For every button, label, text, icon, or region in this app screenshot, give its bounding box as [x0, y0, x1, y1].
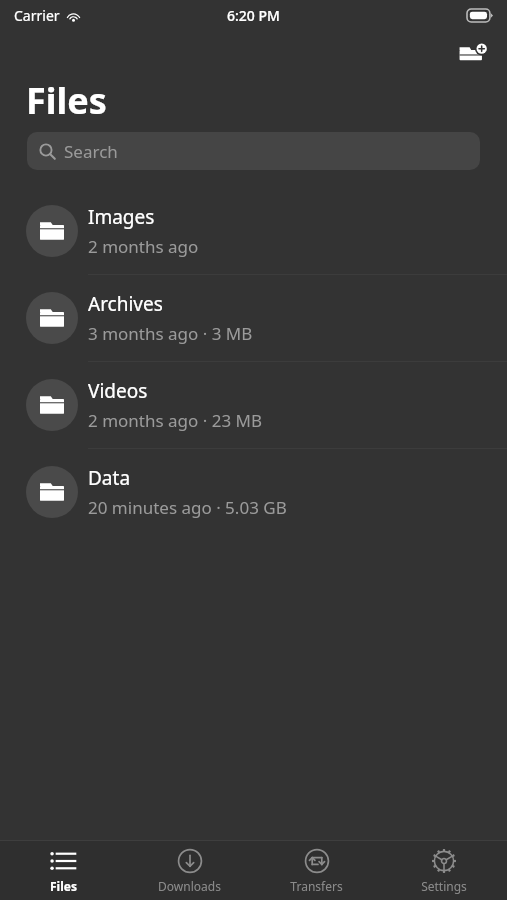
staticText: Files	[50, 878, 77, 894]
button[interactable]: Transfers	[253, 841, 380, 900]
staticText: 2 months ago · 23 MB	[88, 409, 263, 432]
button[interactable]: Images	[0, 188, 507, 274]
staticText: Search	[64, 140, 118, 163]
staticText: 6:20 PM	[227, 6, 280, 25]
button[interactable]: New folder	[451, 31, 495, 75]
button[interactable]: Files	[0, 841, 126, 900]
button[interactable]: Downloads	[126, 841, 253, 900]
staticText: Settings	[421, 878, 467, 894]
staticText: Downloads	[158, 878, 221, 894]
staticText: Data	[88, 465, 131, 491]
staticText: Files	[26, 76, 107, 124]
staticText: 20 minutes ago · 5.03 GB	[88, 496, 287, 519]
staticText: Transfers	[290, 878, 343, 894]
staticText: 2 months ago	[88, 235, 199, 258]
staticText: Videos	[88, 378, 148, 404]
staticText: Carrier	[14, 6, 60, 25]
button[interactable]: Settings	[380, 841, 507, 900]
staticText: Images	[88, 204, 155, 230]
button[interactable]: Videos	[0, 362, 507, 448]
button[interactable]: Search	[27, 132, 480, 170]
staticText: 3 months ago · 3 MB	[88, 322, 253, 345]
button[interactable]: Archives	[0, 275, 507, 361]
staticText: Archives	[88, 291, 163, 317]
button[interactable]: Data	[0, 449, 507, 535]
